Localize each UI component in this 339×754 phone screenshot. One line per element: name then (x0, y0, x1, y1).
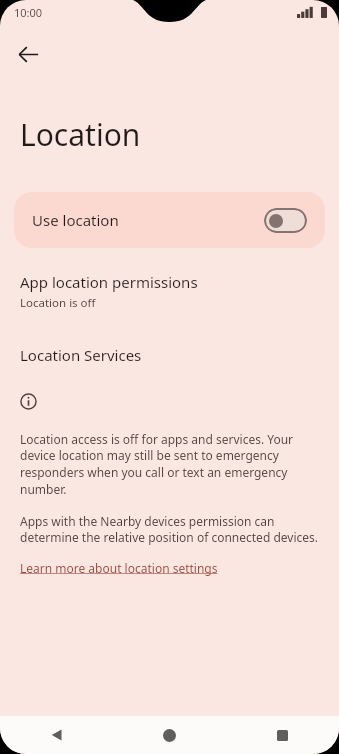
button[interactable]: Learn more about location settings (20, 560, 218, 576)
button[interactable]: Home (113, 729, 226, 742)
staticText: Location Services (20, 345, 142, 365)
staticText: Learn more about location settings (20, 560, 218, 576)
staticText: Apps with the Nearby devices permission … (20, 513, 319, 546)
button[interactable]: Back (6, 32, 50, 76)
button[interactable]: Use location (14, 192, 325, 248)
button[interactable]: Back (0, 728, 113, 742)
staticText: Location is off (20, 295, 96, 311)
button[interactable]: App location permissions (0, 270, 339, 313)
staticText: Location (20, 114, 141, 155)
staticText: 10:00 (14, 5, 43, 20)
button[interactable]: Location Services (0, 343, 339, 367)
button[interactable]: Recent apps (226, 730, 339, 741)
staticText: Location access is off for apps and serv… (20, 431, 319, 498)
staticText: App location permissions (20, 272, 198, 292)
button[interactable]: Use location toggle (264, 208, 307, 233)
staticText: Use location (32, 210, 119, 230)
